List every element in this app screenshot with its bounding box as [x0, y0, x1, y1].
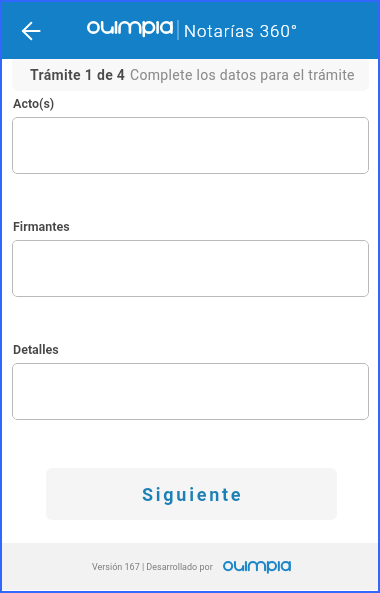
button[interactable] — [12, 117, 369, 174]
button[interactable] — [12, 363, 369, 420]
staticText: Firmantes — [13, 219, 70, 234]
button[interactable]: Siguiente — [46, 468, 337, 520]
staticText: Acto(s) — [13, 96, 55, 111]
staticText: Trámite 1 de 4 — [30, 67, 130, 83]
staticText: Complete los datos para el trámite — [130, 67, 355, 83]
button[interactable] — [12, 240, 369, 297]
button[interactable]: Back — [12, 12, 50, 50]
staticText: Versión 167 | Desarrollado por — [92, 562, 213, 573]
staticText: Siguiente — [142, 484, 244, 505]
staticText: Detalles — [13, 342, 59, 357]
staticText: Notarías 360° — [184, 21, 299, 41]
